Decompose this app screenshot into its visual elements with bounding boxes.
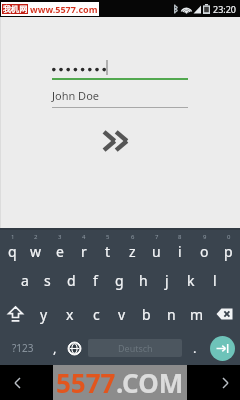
button[interactable]: j bbox=[155, 264, 179, 297]
button[interactable]: a bbox=[13, 264, 36, 297]
button[interactable]: n bbox=[159, 297, 184, 331]
staticText: Deutsch bbox=[118, 342, 153, 354]
staticText: 2 bbox=[34, 233, 38, 241]
staticText: b bbox=[142, 305, 151, 324]
button[interactable]: 8 bbox=[168, 230, 192, 264]
button[interactable]: x bbox=[57, 297, 83, 331]
button[interactable]: Back bbox=[0, 365, 34, 400]
button[interactable]: k bbox=[179, 264, 203, 297]
staticText: 23:20 bbox=[213, 3, 237, 15]
staticText: 1 bbox=[11, 233, 15, 241]
button[interactable]: 7 bbox=[144, 230, 168, 264]
staticText: 4 bbox=[82, 233, 86, 241]
staticText: y bbox=[40, 305, 48, 324]
staticText: u bbox=[152, 242, 161, 261]
staticText: 7 bbox=[155, 233, 159, 241]
button[interactable]: 0 bbox=[216, 230, 240, 264]
staticText: 6 bbox=[131, 233, 135, 241]
staticText: i bbox=[178, 242, 182, 261]
button[interactable]: . bbox=[185, 331, 204, 365]
button[interactable]: f bbox=[83, 264, 107, 297]
button[interactable]: Next bbox=[204, 331, 240, 365]
staticText: p bbox=[224, 242, 233, 261]
staticText: l bbox=[213, 271, 217, 290]
button[interactable]: Forward bbox=[210, 365, 240, 400]
button[interactable]: 6 bbox=[120, 230, 144, 264]
staticText: e bbox=[56, 242, 64, 261]
button[interactable]: s bbox=[36, 264, 59, 297]
staticText: 我机网 bbox=[3, 4, 27, 14]
staticText: 5577 bbox=[56, 365, 116, 400]
button[interactable]: Name bbox=[52, 88, 188, 108]
staticText: z bbox=[129, 242, 136, 261]
staticText: w bbox=[30, 242, 42, 261]
staticText: c bbox=[93, 305, 100, 324]
staticText: v bbox=[118, 305, 126, 324]
staticText: f bbox=[93, 271, 98, 290]
staticText: 3 bbox=[58, 233, 62, 241]
button[interactable]: Delete bbox=[209, 297, 240, 331]
staticText: www.5577.com bbox=[30, 3, 98, 15]
staticText: John Doe bbox=[52, 88, 100, 103]
staticText: n bbox=[167, 305, 176, 324]
staticText: o bbox=[200, 242, 209, 261]
staticText: d bbox=[67, 271, 76, 290]
button[interactable]: m bbox=[184, 297, 209, 331]
button[interactable]: Shift bbox=[0, 297, 31, 331]
staticText: . bbox=[193, 339, 197, 357]
button[interactable]: 1 bbox=[0, 230, 24, 264]
button[interactable]: c bbox=[83, 297, 109, 331]
button[interactable]: l bbox=[203, 264, 227, 297]
button[interactable]: Deutsch bbox=[88, 339, 182, 357]
staticText: j bbox=[165, 271, 169, 290]
staticText: ?123 bbox=[12, 341, 34, 355]
staticText: a bbox=[21, 271, 29, 290]
staticText: m bbox=[190, 305, 204, 324]
staticText: , bbox=[53, 339, 57, 357]
staticText: g bbox=[115, 271, 124, 290]
button[interactable]: Continue bbox=[96, 126, 144, 156]
button[interactable]: v bbox=[109, 297, 134, 331]
button[interactable]: g bbox=[107, 264, 131, 297]
button[interactable]: y bbox=[31, 297, 57, 331]
button[interactable]: ?123 bbox=[0, 331, 46, 365]
staticText: r bbox=[81, 242, 87, 261]
staticText: 9 bbox=[203, 233, 207, 241]
staticText: x bbox=[66, 305, 74, 324]
staticText: k bbox=[187, 271, 195, 290]
button[interactable]: 4 bbox=[72, 230, 96, 264]
staticText: 5 bbox=[106, 233, 110, 241]
staticText: t bbox=[105, 242, 111, 261]
staticText: q bbox=[8, 242, 17, 261]
button[interactable]: Password bbox=[52, 60, 188, 80]
button[interactable]: 3 bbox=[48, 230, 72, 264]
button[interactable]: 5 bbox=[96, 230, 120, 264]
staticText: 8 bbox=[178, 233, 182, 241]
button[interactable]: h bbox=[131, 264, 155, 297]
button[interactable]: 9 bbox=[192, 230, 216, 264]
button[interactable]: Change language bbox=[63, 331, 85, 365]
button[interactable]: , bbox=[46, 331, 63, 365]
staticText: 0 bbox=[227, 233, 231, 241]
button[interactable]: 2 bbox=[24, 230, 48, 264]
button[interactable]: d bbox=[59, 264, 83, 297]
staticText: .COM bbox=[116, 365, 184, 400]
button[interactable]: b bbox=[134, 297, 159, 331]
staticText: s bbox=[44, 271, 51, 290]
staticText: h bbox=[139, 271, 148, 290]
